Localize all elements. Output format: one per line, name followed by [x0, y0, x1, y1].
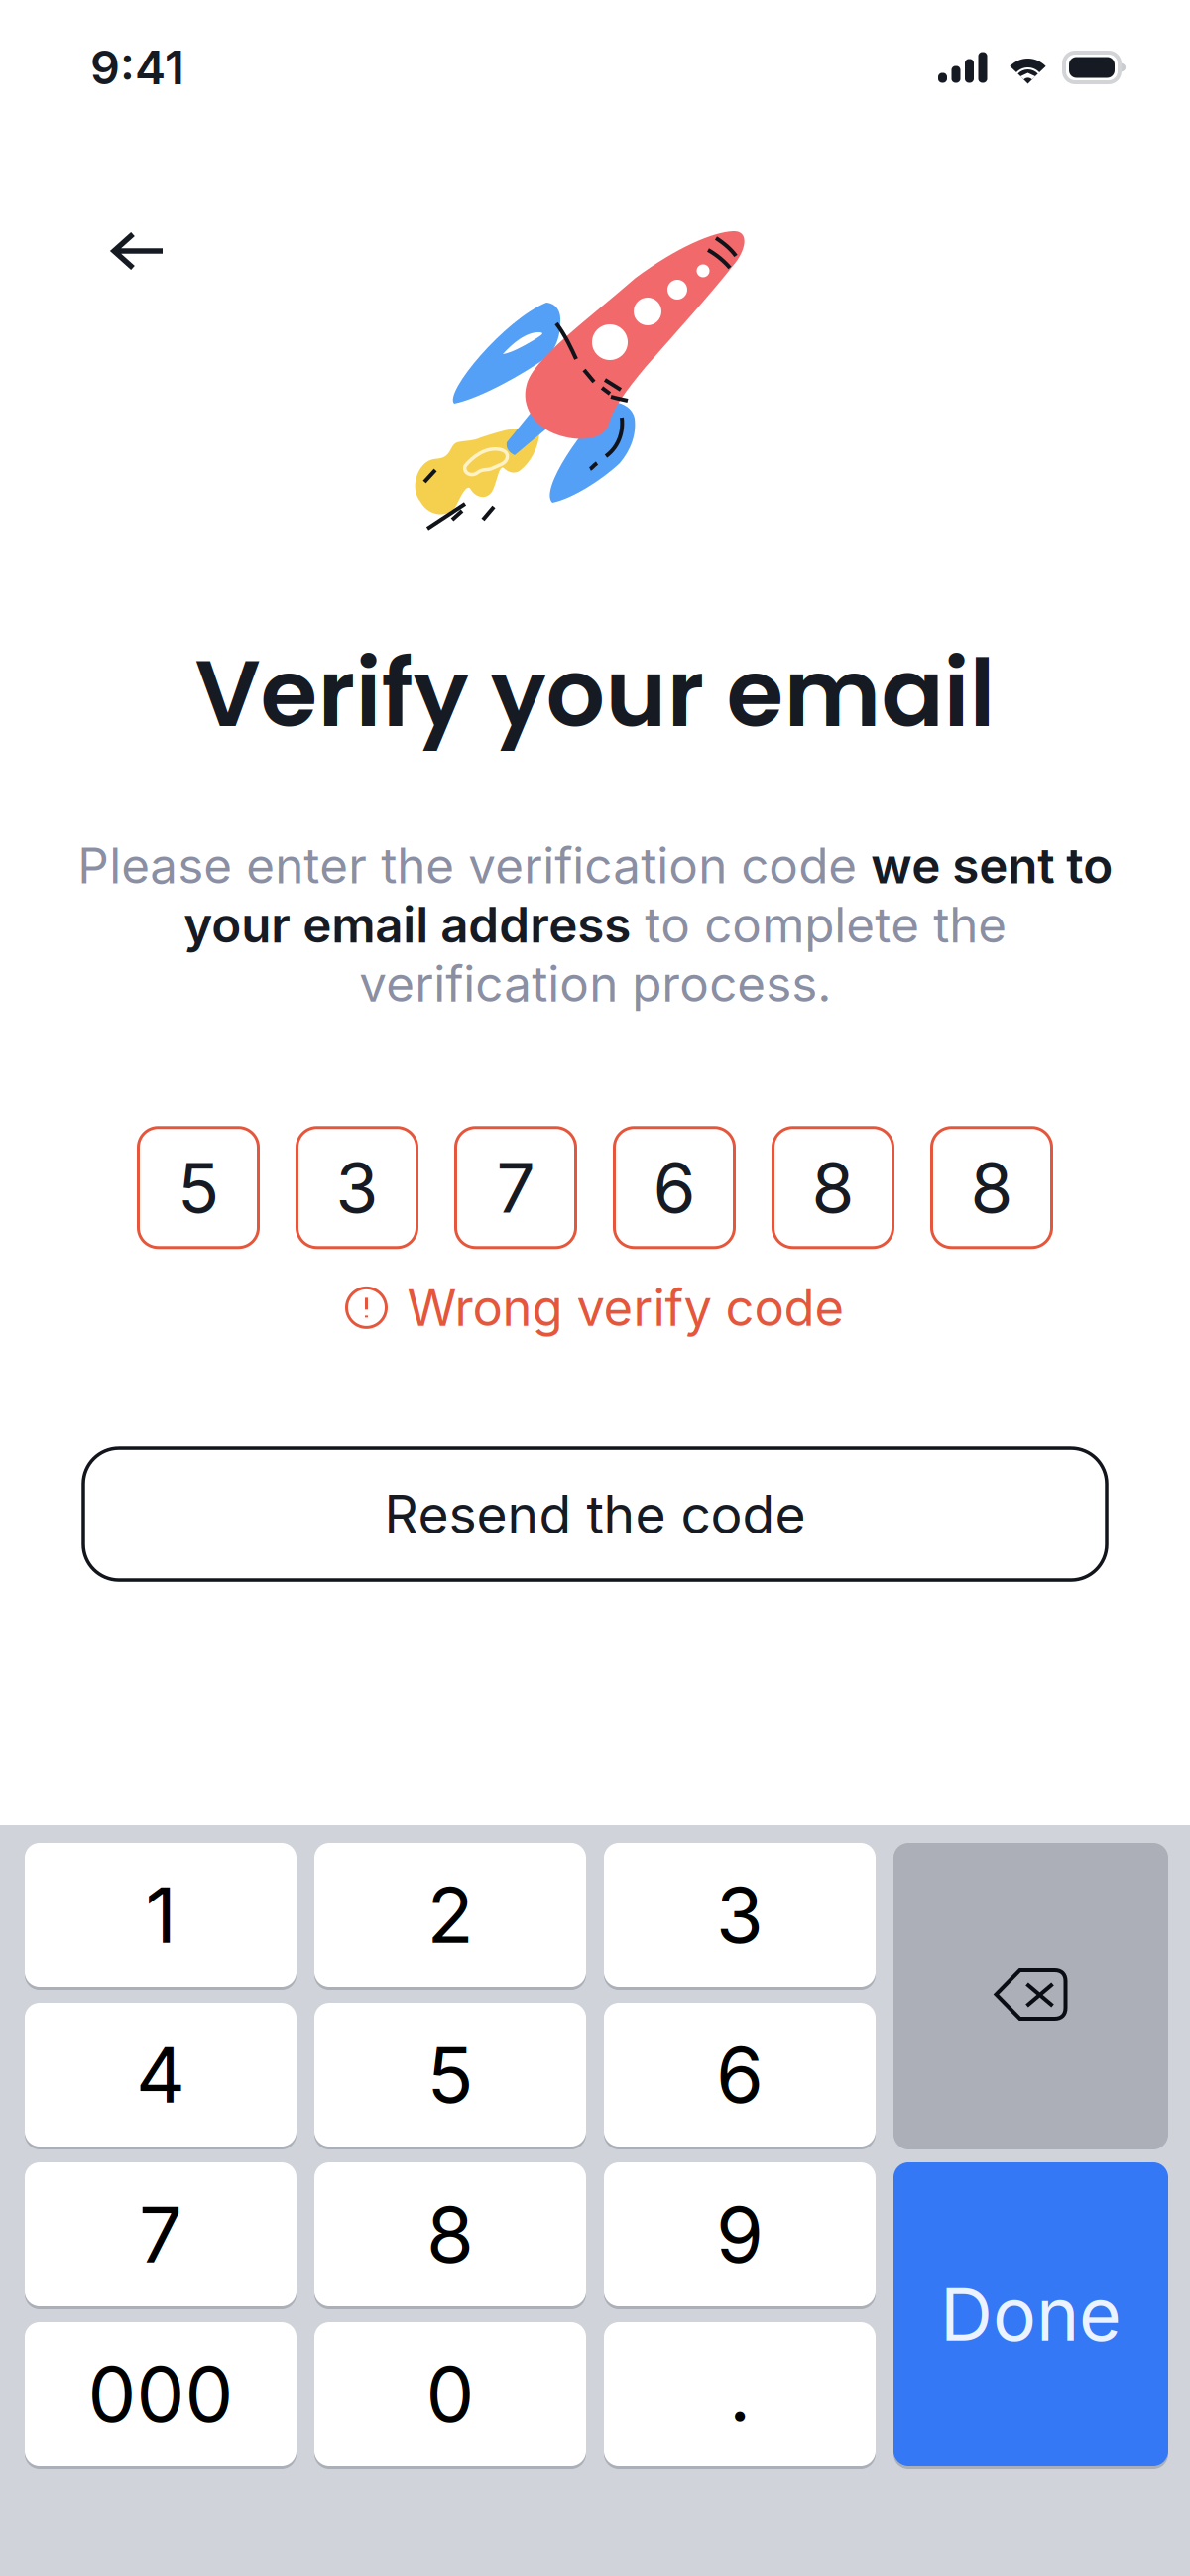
button[interactable]: 5	[138, 1128, 258, 1248]
button[interactable]: 5	[314, 2003, 586, 2147]
button[interactable]: 000	[25, 2322, 297, 2466]
staticText: Verify your email	[195, 629, 995, 759]
button[interactable]: 8	[314, 2162, 586, 2306]
staticText: Done	[940, 2270, 1122, 2358]
button[interactable]: 3	[604, 1843, 876, 1987]
button[interactable]: Delete	[893, 1843, 1168, 2147]
button[interactable]: 4	[25, 2003, 297, 2147]
staticText: 8	[970, 1146, 1013, 1229]
staticText: Resend the code	[384, 1482, 806, 1546]
staticText: 2	[427, 1868, 474, 1961]
staticText: 3	[716, 1868, 764, 1961]
button[interactable]: 8	[773, 1128, 893, 1248]
staticText: 0	[426, 2348, 475, 2440]
staticText: 3	[336, 1146, 378, 1229]
staticText: 7	[496, 1146, 535, 1229]
button[interactable]: 8	[932, 1128, 1052, 1248]
staticText: .	[729, 2348, 751, 2440]
button[interactable]: Back	[85, 205, 191, 297]
button[interactable]: 2	[314, 1843, 586, 1987]
button[interactable]: 6	[604, 2003, 876, 2147]
button[interactable]: Resend the code	[83, 1448, 1107, 1580]
button[interactable]: 7	[456, 1128, 576, 1248]
button[interactable]: .	[604, 2322, 876, 2466]
button[interactable]: 1	[25, 1843, 297, 1987]
staticText: Wrong verify code	[407, 1277, 844, 1338]
staticText: 9:41	[90, 39, 184, 96]
staticText: 6	[716, 2028, 764, 2121]
button[interactable]: 9	[604, 2162, 876, 2306]
button[interactable]: 3	[297, 1128, 417, 1248]
staticText: 5	[427, 2028, 474, 2121]
staticText: 000	[88, 2348, 234, 2440]
staticText: 8	[426, 2188, 474, 2281]
staticText: 4	[136, 2028, 185, 2121]
staticText: 8	[812, 1146, 854, 1229]
button[interactable]: 6	[614, 1128, 734, 1248]
staticText: 5	[178, 1146, 219, 1229]
button[interactable]: 7	[25, 2162, 297, 2306]
button[interactable]: Done	[893, 2162, 1168, 2466]
staticText: 9	[716, 2188, 764, 2281]
button[interactable]: 0	[314, 2322, 586, 2466]
staticText: 1	[145, 1868, 176, 1961]
staticText: Please enter the verification code we se…	[77, 836, 1113, 1014]
staticText: 6	[653, 1146, 696, 1229]
staticText: 7	[139, 2188, 182, 2281]
